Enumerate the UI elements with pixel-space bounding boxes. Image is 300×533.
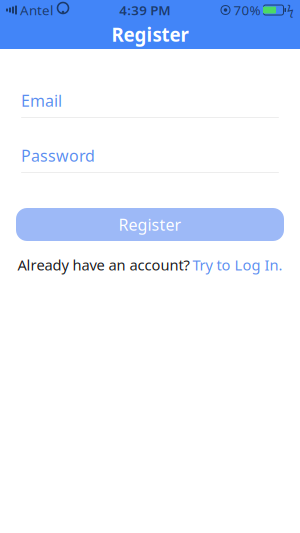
staticText: Register — [111, 22, 188, 47]
staticText: Already have an account? — [17, 255, 189, 274]
staticText: Try to Log In. — [192, 255, 282, 274]
button[interactable]: Try to Log In. — [192, 255, 282, 274]
staticText: ϟ — [287, 2, 294, 18]
staticText: Register — [118, 214, 181, 235]
staticText: Password — [21, 145, 95, 166]
staticText: 70% — [233, 1, 260, 19]
staticText: 4:39 PM — [119, 1, 170, 19]
staticText: Email — [21, 90, 62, 111]
button[interactable]: Register — [16, 208, 284, 241]
staticText: Antel — [20, 1, 53, 19]
